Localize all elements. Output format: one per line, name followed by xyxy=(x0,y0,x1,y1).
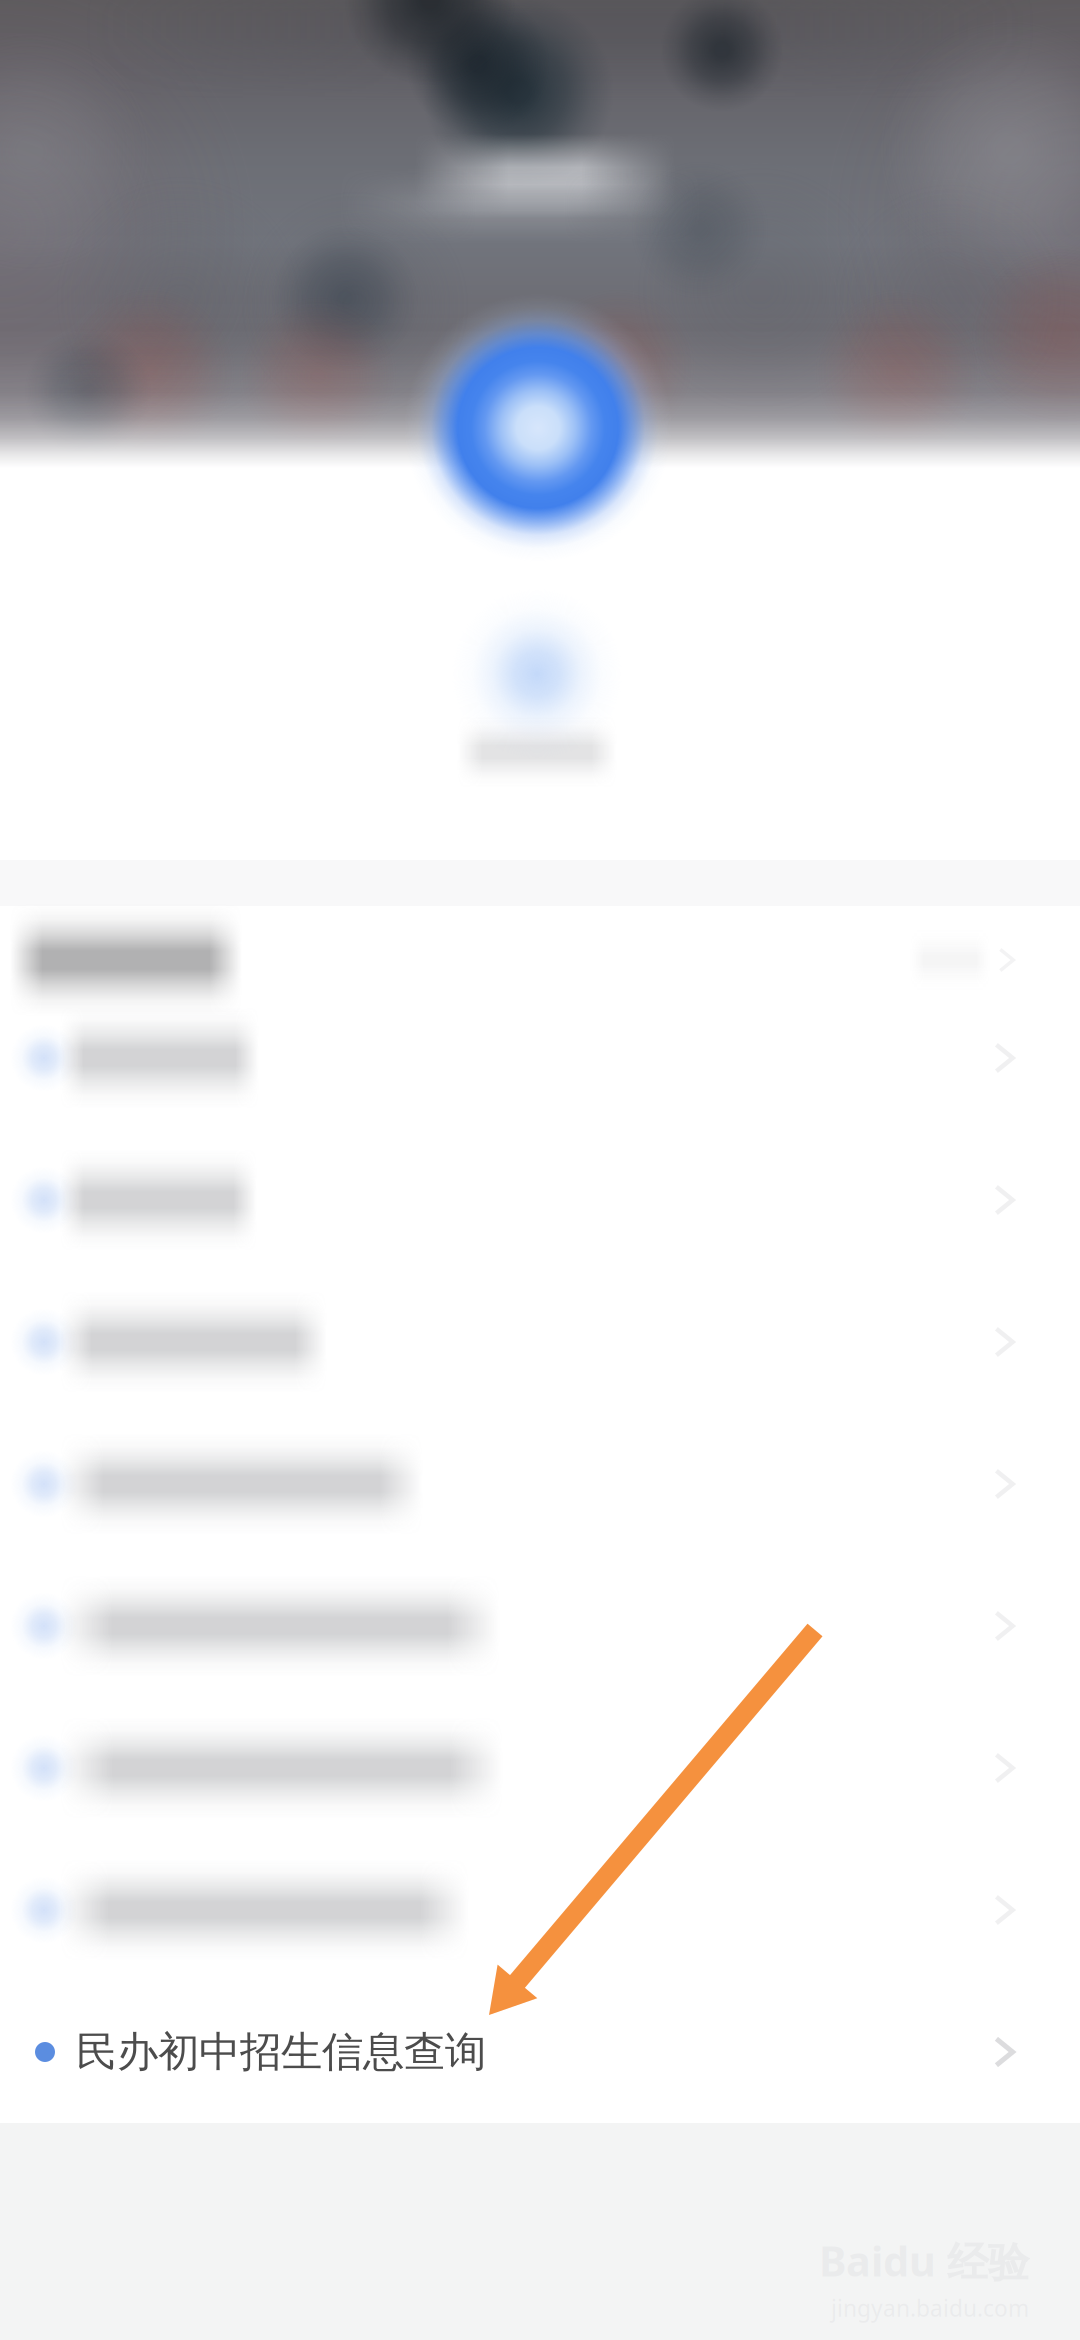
staticText: Baidu 经验 xyxy=(819,2233,1029,2288)
button[interactable]: 更多 xyxy=(0,906,1080,987)
button[interactable]: 列表项 xyxy=(0,1129,1080,1271)
button[interactable]: 列表项 xyxy=(0,1839,1080,1981)
button[interactable]: 列表项 xyxy=(0,1697,1080,1839)
staticText: 民办初中招生信息查询 xyxy=(76,2027,486,2077)
button[interactable]: 列表项 xyxy=(0,1555,1080,1697)
button[interactable]: 列表项 xyxy=(0,1271,1080,1413)
button[interactable]: 快捷入口 xyxy=(387,600,687,830)
button[interactable]: 民办初中招生信息查询 xyxy=(0,1981,1080,2123)
button[interactable]: 列表项 xyxy=(0,987,1080,1129)
button[interactable]: 列表项 xyxy=(0,1413,1080,1555)
